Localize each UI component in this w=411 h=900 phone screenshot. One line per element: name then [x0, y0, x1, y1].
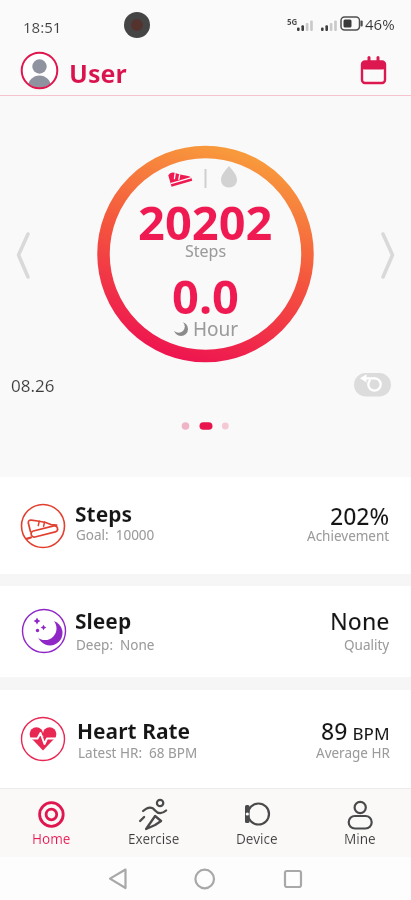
staticText: Steps [75, 500, 133, 529]
staticText: 46% [365, 14, 395, 34]
staticText: Quality [344, 636, 390, 654]
staticText: Achievement [307, 527, 390, 545]
staticText: Goal: 10000 [76, 526, 155, 544]
button[interactable] [102, 789, 204, 857]
staticText: Latest HR: 68 BPM [78, 744, 198, 762]
staticText: Mine [344, 830, 376, 848]
staticText: 20202 [138, 190, 273, 254]
button[interactable] [0, 477, 411, 574]
staticText: 89 [321, 715, 348, 746]
button[interactable] [175, 860, 235, 900]
staticText: Deep: None [76, 636, 155, 654]
staticText: Steps [185, 240, 227, 262]
staticText: BPM [348, 722, 390, 745]
button[interactable] [0, 586, 411, 677]
button[interactable] [0, 789, 102, 857]
staticText: Average HR [316, 744, 390, 762]
staticText: 5G [287, 16, 298, 27]
staticText: Heart Rate [77, 717, 191, 746]
staticText: Sleep [75, 607, 132, 636]
button[interactable] [205, 789, 307, 857]
staticText: Exercise [128, 830, 180, 848]
staticText: 08.26 [11, 374, 55, 397]
button[interactable] [21, 52, 58, 89]
staticText: Device [236, 830, 278, 848]
button[interactable]: User [69, 56, 127, 90]
staticText: 0.0 [172, 264, 239, 328]
button[interactable] [0, 690, 411, 788]
button[interactable] [356, 52, 392, 88]
button[interactable] [265, 860, 325, 900]
staticText: Home [32, 830, 71, 848]
button[interactable] [80, 860, 140, 900]
staticText: Hour [193, 316, 239, 342]
button[interactable] [308, 789, 411, 857]
staticText: 202% [330, 500, 390, 531]
staticText: 18:51 [23, 17, 62, 37]
staticText: None [330, 605, 390, 636]
